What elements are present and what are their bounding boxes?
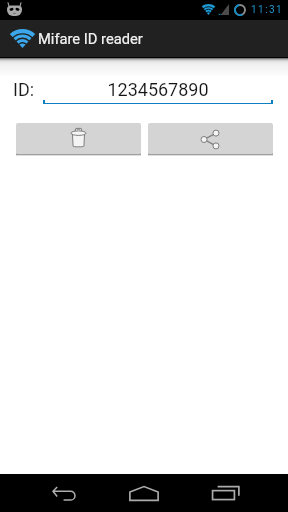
button[interactable]: Delete	[16, 123, 141, 154]
button[interactable]: Back	[24, 474, 104, 512]
staticText: ID:	[13, 79, 35, 100]
staticText: 11:31	[251, 4, 284, 16]
button[interactable]: Recent apps	[186, 474, 266, 512]
staticText: 1234567890	[43, 79, 273, 100]
button[interactable]: Share	[148, 123, 273, 154]
button[interactable]: Mifare ID reader	[0, 20, 288, 57]
staticText: Mifare ID reader	[38, 30, 143, 47]
button[interactable]: Home	[104, 474, 184, 512]
